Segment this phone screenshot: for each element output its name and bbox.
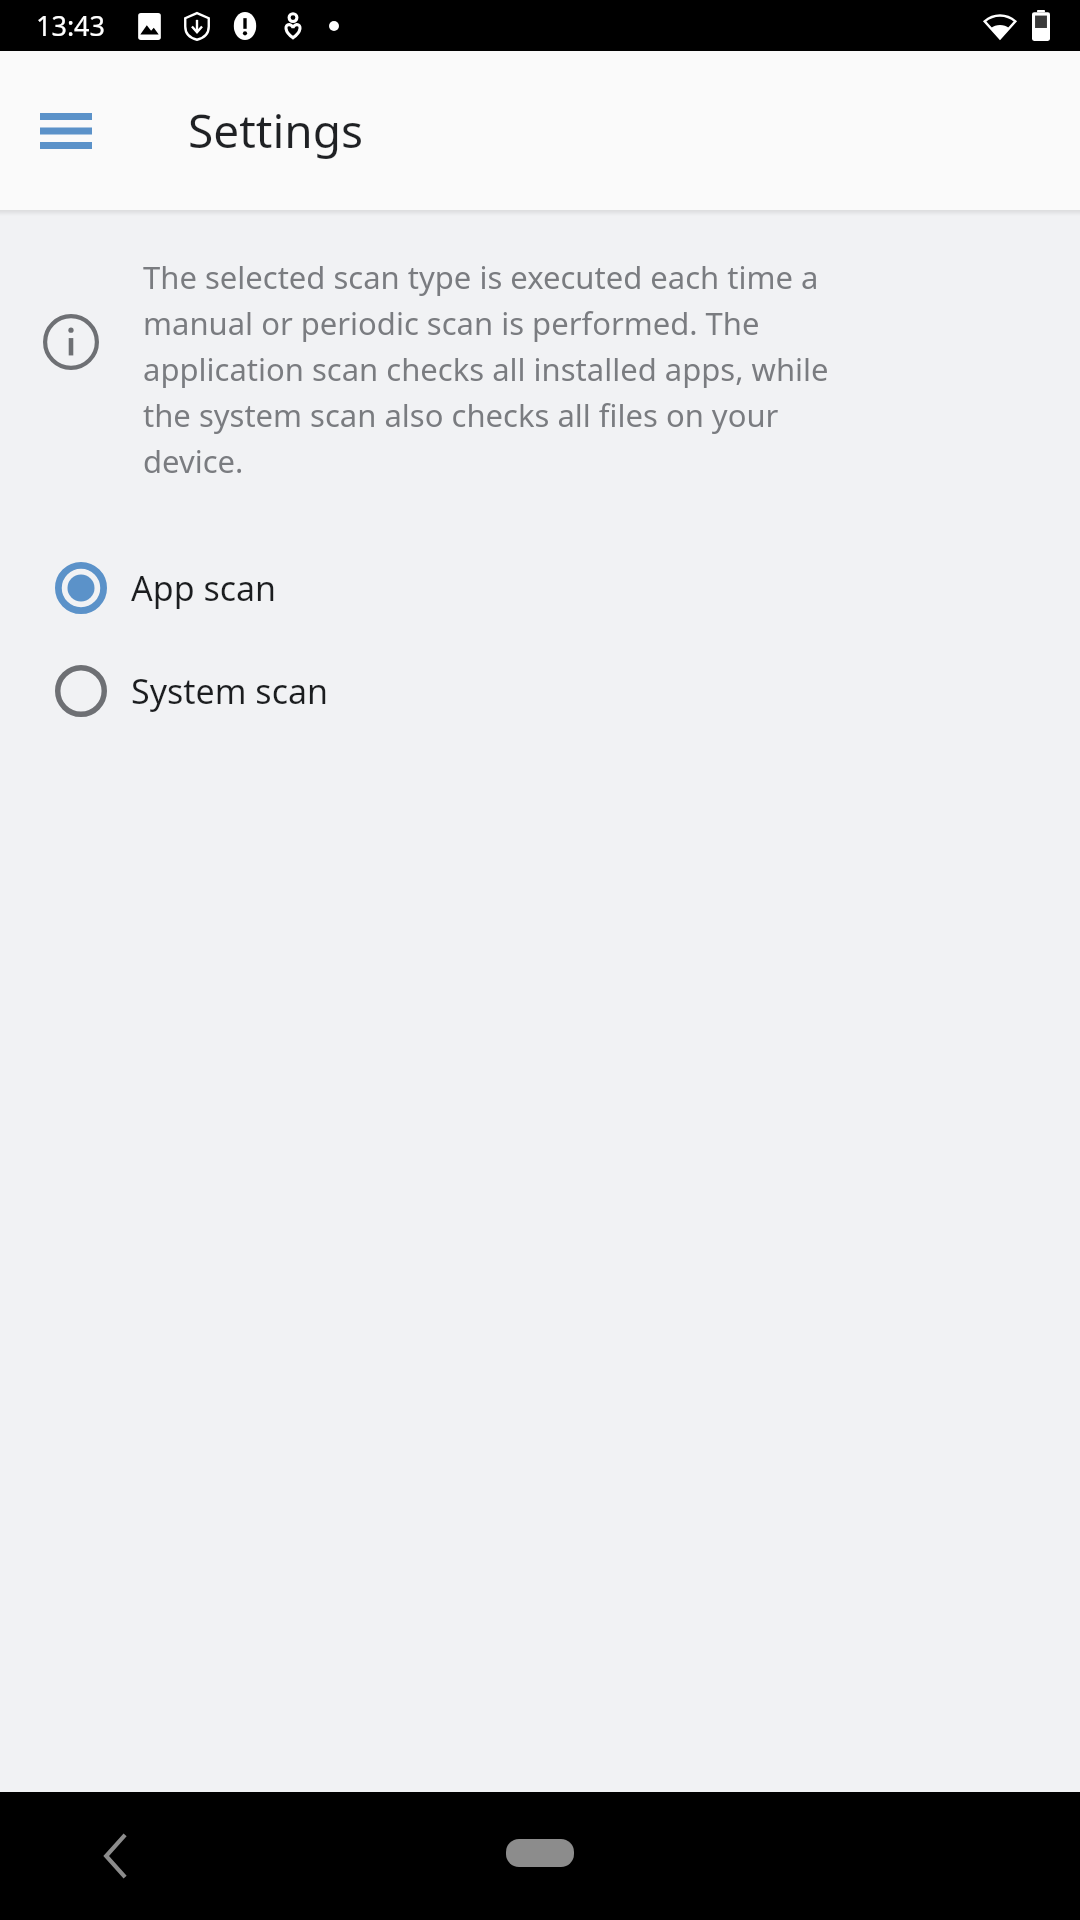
button[interactable]: Home bbox=[485, 1825, 595, 1881]
button[interactable]: Open navigation menu bbox=[18, 83, 114, 179]
staticText: 13:43 bbox=[36, 7, 106, 44]
button[interactable]: Back bbox=[68, 1808, 164, 1904]
staticText: The selected scan type is executed each … bbox=[143, 256, 863, 482]
button[interactable]: App scan bbox=[0, 536, 1080, 639]
button[interactable]: System scan bbox=[0, 639, 1080, 742]
staticText: System scan bbox=[131, 668, 329, 714]
staticText: Settings bbox=[188, 99, 364, 162]
staticText: App scan bbox=[131, 565, 277, 611]
